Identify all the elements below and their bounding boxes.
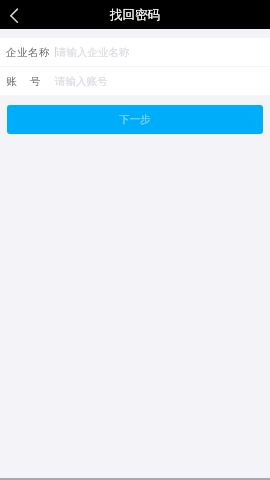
staticText: 企 (6, 46, 17, 59)
staticText: 下一步 (119, 113, 151, 126)
staticText: 号 (30, 75, 41, 88)
staticText: 请输入企业名称 (56, 46, 130, 59)
staticText: 名 (28, 46, 39, 59)
staticText: 找回密码 (0, 7, 270, 23)
button[interactable]: Back (0, 0, 29, 29)
staticText: 称 (39, 46, 48, 59)
staticText: 业 (17, 46, 28, 59)
button[interactable]: 下一步 (7, 105, 263, 134)
staticText: 请输入账号 (55, 75, 108, 88)
button[interactable]: 账 (6, 67, 270, 95)
button[interactable]: 企 (6, 38, 270, 66)
staticText: 账 (6, 75, 17, 88)
